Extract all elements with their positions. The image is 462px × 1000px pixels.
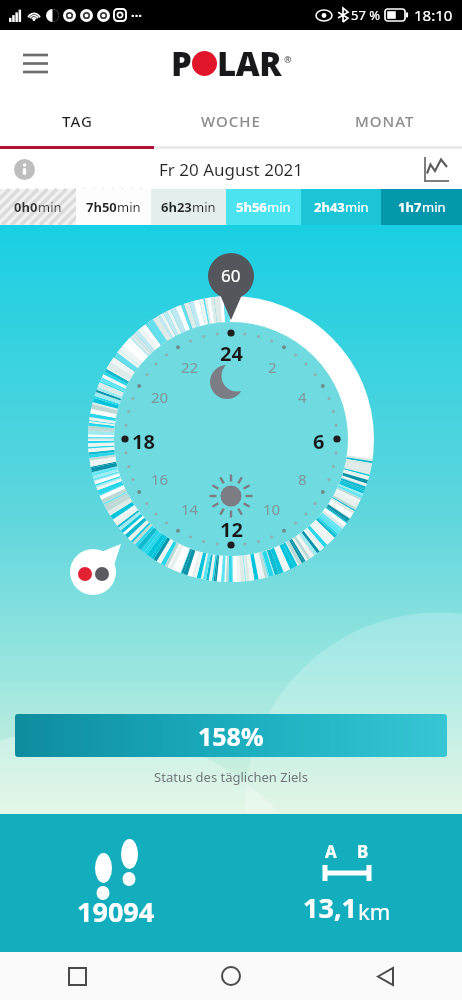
- staticText: LAR: [217, 41, 282, 86]
- button[interactable]: 0h0: [0, 189, 76, 225]
- button[interactable]: 7h50: [76, 189, 151, 225]
- button[interactable]: MONAT: [308, 96, 462, 146]
- staticText: min: [192, 198, 216, 216]
- button[interactable]: 1h7: [381, 189, 462, 225]
- staticText: B: [357, 840, 369, 863]
- staticText: min: [267, 198, 291, 216]
- button[interactable]: 5h56: [226, 189, 301, 225]
- staticText: 158%: [198, 719, 264, 753]
- staticText: 7h50: [86, 198, 117, 216]
- staticText: 16: [151, 469, 169, 489]
- staticText: 2: [268, 357, 277, 377]
- staticText: 60: [221, 264, 241, 287]
- staticText: 22: [181, 357, 199, 377]
- staticText: 0h0: [14, 198, 38, 216]
- staticText: A: [325, 840, 337, 863]
- staticText: MONAT: [355, 111, 415, 131]
- button[interactable]: 158%: [15, 714, 447, 757]
- staticText: 6: [313, 428, 325, 455]
- staticText: ®: [284, 53, 292, 65]
- staticText: TAG: [62, 111, 93, 131]
- button[interactable]: WOCHE: [154, 96, 308, 146]
- staticText: min: [422, 198, 446, 216]
- button[interactable]: Chart: [418, 151, 454, 187]
- button[interactable]: TAG: [0, 96, 154, 146]
- staticText: 4: [298, 387, 307, 407]
- staticText: 18: [132, 428, 155, 455]
- staticText: 24: [220, 340, 243, 367]
- staticText: min: [345, 198, 369, 216]
- staticText: Status des täglichen Ziels: [0, 768, 462, 786]
- button[interactable]: Recents: [0, 952, 154, 1000]
- staticText: 18:10: [414, 5, 453, 25]
- staticText: 13,1: [303, 889, 358, 926]
- button[interactable]: Menu: [12, 40, 58, 86]
- staticText: 10: [263, 499, 281, 519]
- button[interactable]: 6h23: [151, 189, 226, 225]
- staticText: 8: [298, 469, 307, 489]
- staticText: min: [38, 198, 62, 216]
- staticText: 6h23: [161, 198, 192, 216]
- button[interactable]: Back: [308, 952, 462, 1000]
- staticText: Fr 20 August 2021: [159, 158, 304, 181]
- staticText: min: [117, 198, 141, 216]
- staticText: 12: [220, 516, 243, 543]
- staticText: 2h43: [314, 198, 345, 216]
- button[interactable]: 19094: [0, 814, 231, 952]
- button[interactable]: Info: [7, 152, 41, 186]
- staticText: 1h7: [398, 198, 422, 216]
- staticText: 19094: [77, 893, 155, 930]
- staticText: ···: [131, 6, 142, 24]
- button[interactable]: A: [231, 814, 462, 952]
- staticText: P: [171, 41, 192, 86]
- staticText: 5h56: [236, 198, 267, 216]
- staticText: 20: [151, 387, 169, 407]
- button[interactable]: 2h43: [301, 189, 381, 225]
- staticText: WOCHE: [201, 111, 261, 131]
- staticText: km: [358, 896, 391, 926]
- staticText: 57 %: [351, 6, 381, 24]
- staticText: 14: [181, 499, 199, 519]
- button[interactable]: Home: [154, 952, 308, 1000]
